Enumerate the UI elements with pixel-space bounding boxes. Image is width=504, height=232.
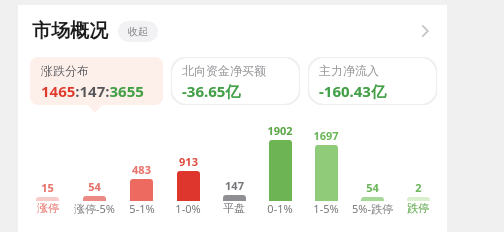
- staticText: 平盘: [223, 201, 245, 215]
- staticText: 1902: [267, 123, 293, 138]
- button[interactable]: 主力净流入: [308, 57, 437, 105]
- button[interactable]: 54: [71, 179, 118, 201]
- staticText: 5%-跌停: [352, 201, 393, 216]
- button[interactable]: 北向资金净买额: [171, 57, 300, 105]
- button[interactable]: 54: [349, 180, 395, 201]
- staticText: 15: [41, 180, 54, 195]
- staticText: 2: [415, 180, 422, 195]
- staticText: 涨跌分布: [41, 63, 89, 78]
- staticText: 913: [179, 154, 198, 169]
- staticText: 涨停-5%: [74, 201, 115, 216]
- staticText: 54: [88, 179, 101, 194]
- staticText: -160.43亿: [319, 81, 386, 101]
- button[interactable]: 147: [211, 178, 257, 201]
- staticText: 收起: [128, 25, 148, 38]
- staticText: 483: [132, 162, 151, 177]
- button[interactable]: 913: [165, 154, 211, 201]
- staticText: 涨停: [37, 201, 59, 215]
- button[interactable]: Expand: [411, 17, 439, 45]
- staticText: -36.65亿: [182, 81, 241, 101]
- staticText: 北向资金净买额: [182, 63, 266, 78]
- staticText: 跌停: [407, 201, 429, 215]
- staticText: 1-0%: [175, 201, 201, 216]
- button[interactable]: 1697: [303, 128, 349, 201]
- staticText: 市场概况: [32, 19, 108, 43]
- staticText: 1697: [313, 128, 339, 143]
- staticText: 147: [225, 178, 244, 193]
- staticText: 0-1%: [267, 201, 293, 216]
- button[interactable]: 483: [118, 162, 165, 201]
- staticText: 54: [366, 180, 379, 195]
- staticText: 5-1%: [129, 201, 155, 216]
- staticText: 1-5%: [313, 201, 339, 216]
- staticText: 主力净流入: [319, 63, 379, 78]
- button[interactable]: 1902: [257, 123, 303, 201]
- button[interactable]: 2: [395, 180, 441, 201]
- button[interactable]: 15: [24, 180, 71, 201]
- staticText: 1465:147:3655: [41, 81, 144, 101]
- button[interactable]: 收起: [118, 21, 158, 42]
- button[interactable]: 涨跌分布: [30, 57, 163, 105]
